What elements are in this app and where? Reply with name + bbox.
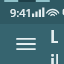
staticText: Library — [50, 24, 58, 64]
staticText: 9:41 — [10, 5, 32, 20]
button[interactable]: Open navigation menu — [6, 24, 46, 64]
button[interactable]: Add new item — [4, 0, 50, 2]
